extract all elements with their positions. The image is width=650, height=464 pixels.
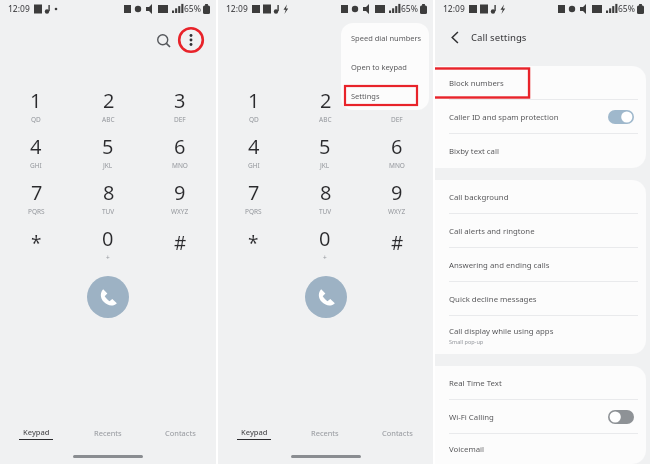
staticText: Real Time Text — [449, 378, 502, 389]
staticText: Caller ID and spam protection — [449, 112, 559, 123]
staticText: MNO — [389, 161, 405, 170]
staticText: 5 — [319, 133, 331, 160]
staticText: Call alerts and ringtone — [449, 226, 535, 237]
button[interactable]: Block numbers — [435, 66, 646, 100]
button[interactable]: Voicemail — [435, 434, 646, 464]
button[interactable]: Call background — [435, 180, 646, 214]
staticText: # — [391, 230, 404, 256]
staticText: * — [248, 230, 259, 256]
button[interactable]: 6 — [361, 128, 433, 174]
staticText: 0 — [102, 225, 114, 252]
button[interactable]: Caller ID and spam protection — [435, 100, 646, 134]
staticText: 8 — [320, 179, 332, 206]
staticText: 65% — [184, 3, 201, 15]
staticText: MNO — [172, 161, 188, 170]
staticText: JKL — [103, 161, 113, 170]
button[interactable]: 1 — [218, 82, 289, 128]
staticText: 9 — [391, 179, 403, 206]
button[interactable]: Open to keypad — [341, 52, 429, 81]
staticText: 7 — [31, 179, 43, 206]
staticText: GHI — [30, 161, 42, 170]
button[interactable]: Back — [445, 27, 465, 47]
button[interactable]: # — [361, 220, 433, 266]
staticText: 4 — [248, 133, 260, 160]
button[interactable]: 2 — [289, 82, 361, 128]
staticText: Bixby text call — [449, 146, 500, 157]
staticText: 9 — [174, 179, 186, 206]
button[interactable]: 4 — [218, 128, 289, 174]
button[interactable]: 7 — [0, 174, 72, 220]
button[interactable]: 0 — [72, 220, 144, 266]
button[interactable]: 8 — [289, 174, 361, 220]
staticText: 12:09 — [443, 3, 465, 15]
staticText: 8 — [103, 179, 115, 206]
button[interactable]: Call — [87, 276, 129, 318]
button[interactable]: Wi-Fi Calling — [435, 400, 646, 434]
staticText: 2 — [103, 87, 115, 114]
button[interactable]: 5 — [72, 128, 144, 174]
staticText: QD — [249, 115, 259, 124]
staticText: 12:09 — [226, 3, 248, 15]
button[interactable]: Keypad — [0, 418, 72, 448]
button[interactable]: 9 — [361, 174, 433, 220]
staticText: 5 — [102, 133, 114, 160]
button[interactable]: More options — [178, 27, 204, 53]
button[interactable]: 5 — [289, 128, 361, 174]
staticText: Call background — [449, 192, 509, 203]
button[interactable]: Settings — [341, 81, 429, 110]
staticText: DEF — [391, 115, 403, 124]
button[interactable]: 7 — [218, 174, 289, 220]
button[interactable]: 1 — [0, 82, 72, 128]
staticText: * — [31, 230, 42, 256]
staticText: 4 — [30, 133, 42, 160]
button[interactable]: 8 — [72, 174, 144, 220]
staticText: Settings — [351, 91, 380, 101]
staticText: Recents — [94, 428, 122, 438]
button[interactable]: # — [144, 220, 216, 266]
staticText: ABC — [319, 115, 332, 124]
button[interactable]: Contacts — [361, 418, 433, 448]
button[interactable]: Bixby text call — [435, 134, 646, 168]
staticText: Recents — [311, 428, 339, 438]
button[interactable]: 3 — [361, 82, 433, 128]
staticText: DEF — [174, 115, 186, 124]
staticText: 6 — [174, 133, 186, 160]
button[interactable]: * — [218, 220, 289, 266]
button[interactable]: Answering and ending calls — [435, 248, 646, 282]
button[interactable]: Call display while using apps — [435, 316, 646, 354]
button[interactable]: Keypad — [218, 418, 289, 448]
button[interactable]: 4 — [0, 128, 72, 174]
button[interactable]: Caller ID and spam protection toggle — [608, 110, 634, 124]
staticText: Block numbers — [449, 78, 504, 89]
staticText: 3 — [391, 87, 403, 114]
button[interactable]: 3 — [144, 82, 216, 128]
staticText: Contacts — [382, 428, 413, 438]
button[interactable]: Real Time Text — [435, 366, 646, 400]
staticText: 65% — [401, 3, 418, 15]
button[interactable]: Recents — [72, 418, 144, 448]
staticText: 65% — [618, 3, 635, 15]
staticText: QD — [31, 115, 41, 124]
button[interactable]: Call — [305, 276, 347, 318]
staticText: 0 — [319, 225, 331, 252]
button[interactable]: Contacts — [144, 418, 216, 448]
button[interactable]: 9 — [144, 174, 216, 220]
button[interactable]: Search — [152, 29, 174, 51]
staticText: Small pop-up — [449, 338, 484, 345]
button[interactable]: 2 — [72, 82, 144, 128]
button[interactable]: Quick decline messages — [435, 282, 646, 316]
staticText: + — [323, 253, 327, 262]
staticText: Wi-Fi Calling — [449, 412, 494, 423]
staticText: ABC — [102, 115, 115, 124]
staticText: PQRS — [245, 207, 262, 216]
button[interactable]: Wi-Fi Calling toggle — [608, 410, 634, 424]
button[interactable]: 0 — [289, 220, 361, 266]
button[interactable]: Speed dial numbers — [341, 23, 429, 52]
staticText: GHI — [248, 161, 260, 170]
staticText: Contacts — [165, 428, 196, 438]
button[interactable]: Call alerts and ringtone — [435, 214, 646, 248]
staticText: WXYZ — [388, 207, 406, 216]
button[interactable]: 6 — [144, 128, 216, 174]
button[interactable]: * — [0, 220, 72, 266]
button[interactable]: Recents — [289, 418, 361, 448]
